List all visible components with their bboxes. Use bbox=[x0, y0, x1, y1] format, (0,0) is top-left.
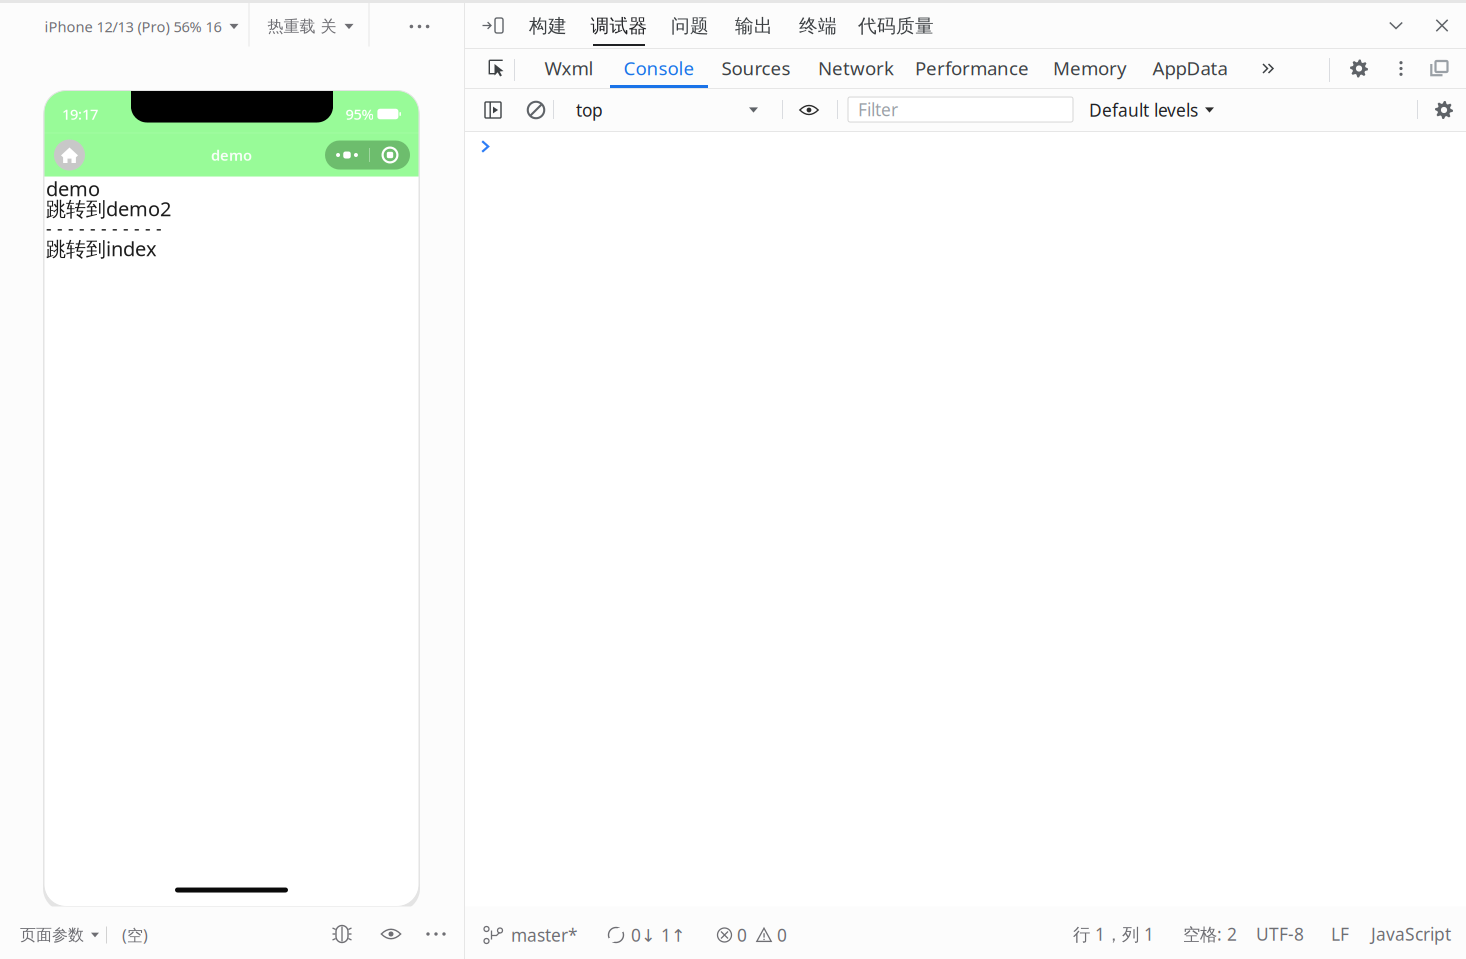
staticText: Filter bbox=[858, 98, 898, 121]
staticText: 0↓ 1↑ bbox=[631, 923, 686, 946]
staticText: JavaScript bbox=[1371, 922, 1451, 945]
staticText: 调试器 bbox=[590, 14, 647, 37]
button[interactable]: Preview bbox=[370, 908, 412, 959]
staticText: Sources bbox=[721, 56, 790, 80]
staticText: demo bbox=[46, 175, 100, 202]
button[interactable]: Home bbox=[54, 139, 85, 170]
button[interactable]: 代码质量 bbox=[850, 3, 942, 48]
staticText: Console bbox=[623, 56, 694, 80]
button[interactable]: 问题 bbox=[658, 3, 722, 48]
staticText: Default levels bbox=[1089, 98, 1198, 121]
staticText: 构建 bbox=[529, 14, 567, 37]
button[interactable]: top bbox=[565, 89, 770, 131]
staticText: UTF-8 bbox=[1256, 922, 1304, 945]
button[interactable]: Sources bbox=[708, 49, 804, 88]
staticText: 0 bbox=[737, 923, 747, 946]
button[interactable]: 终端 bbox=[786, 3, 850, 48]
button[interactable]: AppData bbox=[1140, 49, 1240, 88]
staticText: 空格: 2 bbox=[1183, 922, 1237, 945]
button[interactable]: More bbox=[369, 3, 469, 50]
button[interactable]: Toggle panel bbox=[478, 3, 507, 48]
staticText: 0 bbox=[777, 923, 787, 946]
button[interactable]: 热重载 关 bbox=[249, 3, 368, 50]
button[interactable]: 输出 bbox=[722, 3, 786, 48]
staticText: 热重载 关 bbox=[267, 17, 336, 36]
button[interactable]: Close bbox=[1419, 3, 1465, 48]
button[interactable]: 构建 bbox=[516, 3, 580, 48]
button[interactable]: Dock side bbox=[1417, 49, 1461, 88]
button[interactable]: More options bbox=[415, 908, 457, 959]
staticText: AppData bbox=[1152, 56, 1227, 80]
staticText: (空) bbox=[122, 924, 148, 946]
staticText: 页面参数 bbox=[20, 925, 84, 945]
button[interactable]: Console settings bbox=[1423, 89, 1465, 131]
button[interactable]: Filter bbox=[848, 97, 1073, 122]
button[interactable]: Settings bbox=[1337, 49, 1381, 88]
button[interactable]: Performance bbox=[906, 49, 1038, 88]
button[interactable]: Debug bbox=[323, 908, 361, 959]
staticText: 代码质量 bbox=[858, 14, 934, 37]
button[interactable]: 0↓ 1↑ bbox=[608, 909, 692, 959]
button[interactable]: Network bbox=[806, 49, 906, 88]
button[interactable]: 跳转到index bbox=[46, 238, 157, 258]
button[interactable]: Menu bbox=[325, 140, 410, 169]
button[interactable]: Console sidebar bbox=[473, 89, 513, 131]
staticText: - - - - - - - - - - - bbox=[46, 217, 162, 240]
button[interactable]: 调试器 bbox=[580, 3, 658, 48]
button[interactable]: Inspect element bbox=[477, 49, 517, 88]
staticText: top bbox=[576, 98, 603, 121]
staticText: 问题 bbox=[671, 14, 709, 37]
staticText: iPhone 12/13 (Pro) 56% 16 bbox=[44, 17, 221, 36]
staticText: Memory bbox=[1053, 56, 1127, 80]
button[interactable]: Live expressions bbox=[791, 89, 827, 131]
button[interactable]: iPhone 12/13 (Pro) 56% 16 bbox=[0, 3, 248, 50]
button[interactable]: Wxml bbox=[531, 49, 607, 88]
button[interactable]: Console bbox=[610, 49, 708, 88]
staticText: demo bbox=[211, 145, 252, 165]
staticText: Performance bbox=[915, 56, 1029, 80]
staticText: LF bbox=[1331, 922, 1349, 945]
staticText: Wxml bbox=[544, 56, 593, 80]
staticText: 95% bbox=[345, 104, 373, 124]
staticText: 跳转到index bbox=[46, 235, 157, 262]
button[interactable]: 0 bbox=[717, 909, 787, 959]
staticText: Network bbox=[818, 56, 894, 80]
button[interactable]: 页面参数 bbox=[20, 909, 105, 959]
staticText: 终端 bbox=[799, 14, 837, 37]
staticText: master* bbox=[511, 923, 578, 946]
button[interactable]: 跳转到demo2 bbox=[46, 198, 171, 218]
button[interactable]: Clear console bbox=[517, 89, 555, 131]
button[interactable]: Minimize bbox=[1373, 3, 1419, 48]
staticText: 输出 bbox=[735, 14, 773, 37]
button[interactable]: Customize bbox=[1385, 49, 1417, 88]
staticText: 19:17 bbox=[62, 104, 98, 124]
button[interactable]: More panels bbox=[1246, 49, 1290, 88]
staticText: 行 1，列 1 bbox=[1073, 922, 1154, 945]
button[interactable]: Default levels bbox=[1085, 89, 1218, 131]
button[interactable]: master* bbox=[488, 909, 584, 959]
staticText: 跳转到demo2 bbox=[46, 195, 171, 222]
button[interactable]: Memory bbox=[1040, 49, 1140, 88]
